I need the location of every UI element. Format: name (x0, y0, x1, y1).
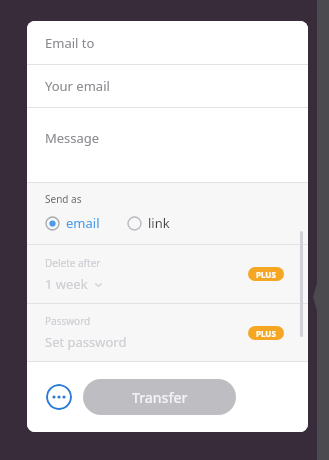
staticText: email (66, 214, 100, 232)
staticText: Email to (45, 34, 95, 52)
button[interactable]: Message (27, 108, 308, 168)
staticText: Delete after (45, 256, 101, 270)
staticText: Your email (45, 77, 110, 95)
staticText: link (148, 214, 170, 232)
button[interactable]: Email to (27, 21, 308, 64)
button[interactable]: link (127, 214, 170, 232)
button[interactable]: Your email (27, 65, 308, 107)
button[interactable]: email (45, 214, 100, 232)
staticText: Message (45, 129, 100, 147)
button[interactable]: Delete after (27, 245, 308, 303)
button[interactable]: PLUS (248, 326, 284, 340)
staticText: PLUS (256, 269, 276, 280)
staticText: Send as (45, 192, 82, 206)
staticText: 1 week (45, 275, 88, 293)
staticText: Transfer (132, 388, 188, 407)
button[interactable]: PLUS (248, 267, 284, 281)
button[interactable]: Password (27, 304, 308, 361)
button[interactable]: More options (46, 384, 72, 410)
staticText: Password (45, 314, 91, 328)
staticText: PLUS (256, 328, 276, 339)
staticText: Set password (45, 333, 127, 351)
button[interactable]: Transfer (83, 379, 236, 415)
